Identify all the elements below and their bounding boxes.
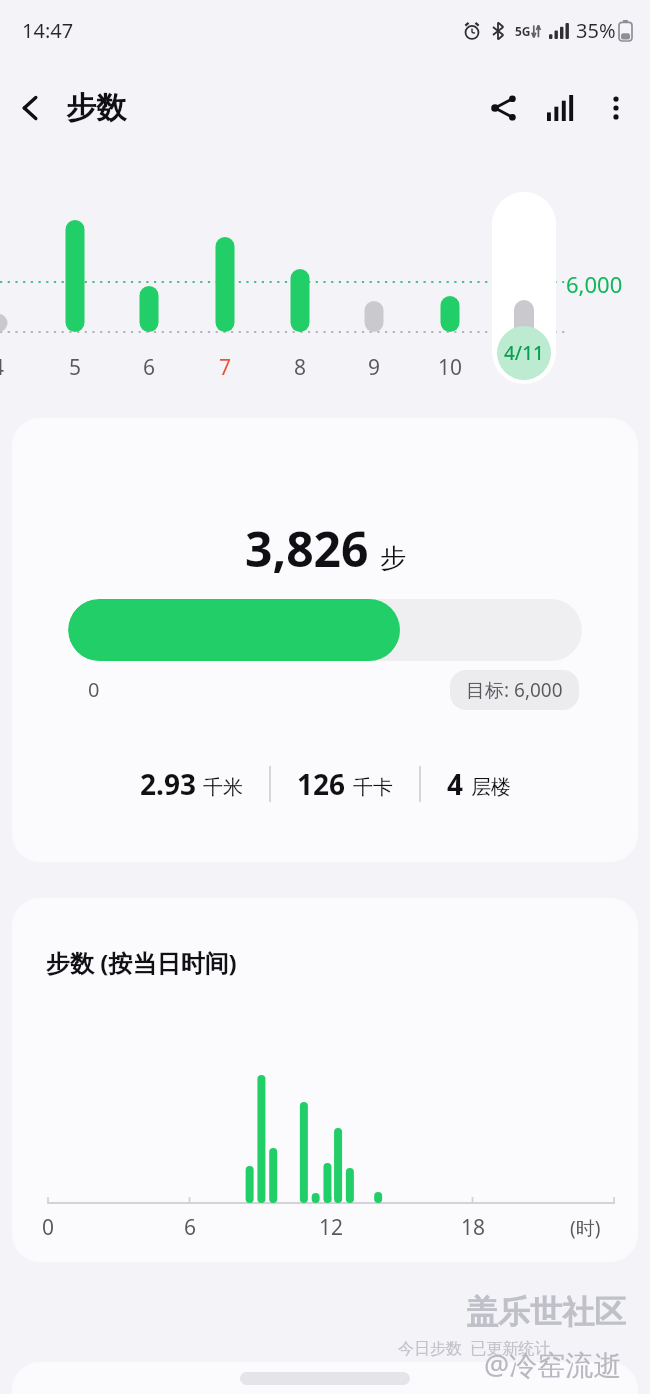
- button[interactable]: 3,826: [12, 418, 638, 862]
- staticText: 目标: 6,000: [466, 677, 563, 703]
- staticText: 14:47: [22, 17, 74, 44]
- button[interactable]: 4: [447, 765, 511, 803]
- button[interactable]: [12, 1362, 638, 1394]
- staticText: 千卡: [353, 775, 393, 800]
- staticText: 步数: [66, 89, 126, 127]
- staticText: 7: [209, 353, 241, 382]
- button[interactable]: Share: [476, 80, 532, 136]
- button[interactable]: 2.93: [140, 765, 243, 803]
- button[interactable]: 126: [297, 765, 393, 803]
- staticText: 0: [88, 676, 100, 703]
- staticText: 步: [380, 542, 406, 575]
- staticText: 步数 (按当日时间): [46, 946, 237, 979]
- staticText: 12: [315, 1213, 347, 1242]
- staticText: 18: [457, 1213, 489, 1242]
- staticText: 126: [297, 765, 346, 803]
- staticText: 6: [133, 353, 165, 382]
- button[interactable]: Back: [0, 77, 62, 139]
- button[interactable]: 步数 (按当日时间): [12, 898, 638, 1262]
- staticText: 3,826: [245, 516, 369, 581]
- staticText: 10: [434, 353, 466, 382]
- button[interactable]: More options: [588, 80, 644, 136]
- staticText: 8: [284, 353, 316, 382]
- staticText: 5G: [515, 23, 531, 39]
- staticText: 今日步数 已更新统计: [398, 1337, 551, 1359]
- staticText: 盖乐世社区: [466, 1292, 626, 1332]
- staticText: 0: [32, 1213, 64, 1242]
- button[interactable]: Trends chart: [532, 80, 588, 136]
- staticText: 2.93: [140, 765, 196, 803]
- staticText: (时): [570, 1215, 601, 1241]
- staticText: 千米: [203, 775, 243, 800]
- button[interactable]: 4/11: [492, 192, 556, 384]
- staticText: 35%: [576, 17, 616, 44]
- staticText: 6,000: [566, 269, 623, 299]
- staticText: @冷窑流逝: [484, 1345, 622, 1383]
- staticText: 9: [358, 353, 390, 382]
- staticText: 4: [0, 353, 14, 382]
- staticText: 4/11: [504, 340, 544, 366]
- staticText: 4: [447, 765, 464, 803]
- staticText: 5: [59, 353, 91, 382]
- staticText: 6: [174, 1213, 206, 1242]
- staticText: 层楼: [471, 775, 511, 800]
